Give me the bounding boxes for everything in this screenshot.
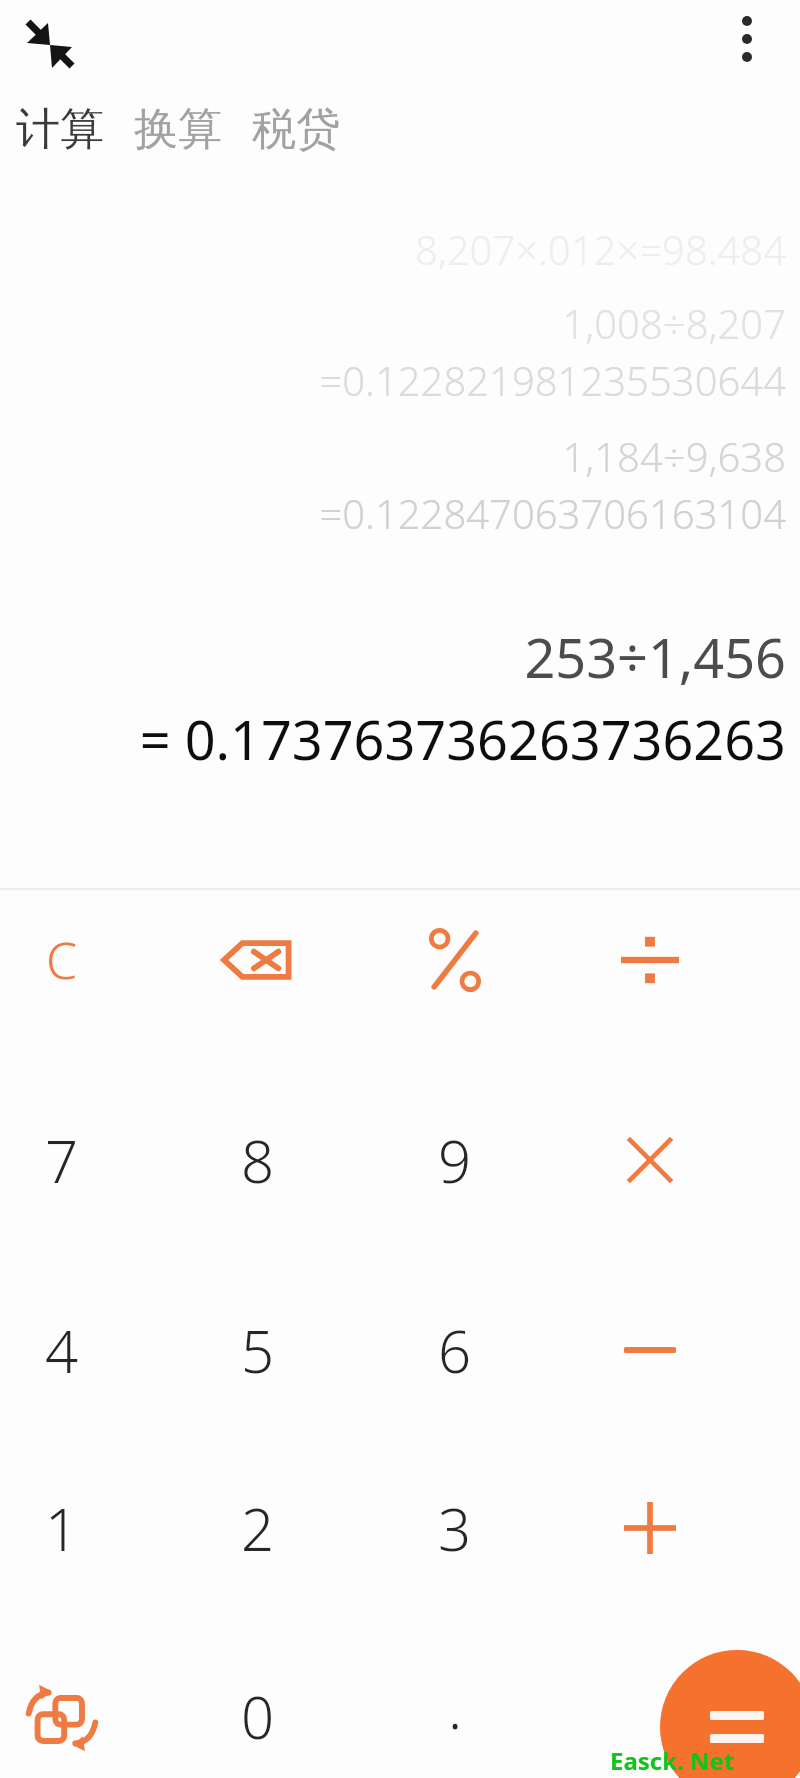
button[interactable]: 6 [360, 1266, 550, 1434]
button[interactable]: 0 [163, 1632, 353, 1778]
button[interactable]: 7 [0, 1076, 157, 1244]
staticText: 2 [241, 1489, 275, 1568]
staticText: =0.122821981235530644 [18, 353, 786, 407]
button[interactable]: Clear [0, 876, 157, 1044]
staticText: 9 [438, 1121, 472, 1200]
button[interactable]: 换算 [130, 96, 226, 163]
staticText: 0 [241, 1677, 275, 1756]
button[interactable]: 1 [0, 1444, 157, 1612]
staticText: 8,207×.012×=98.484 [18, 222, 786, 276]
staticText: 4 [45, 1311, 79, 1390]
staticText: . [448, 1667, 463, 1746]
staticText: 1,008÷8,207 [18, 296, 786, 350]
staticText: 计算 [16, 102, 104, 157]
staticText: 5 [241, 1311, 275, 1390]
button[interactable]: Divide [555, 876, 745, 1044]
button[interactable]: Collapse [4, 0, 88, 84]
staticText: 税贷 [252, 102, 340, 157]
staticText: 3 [438, 1489, 472, 1568]
staticText: 1 [45, 1489, 79, 1568]
button[interactable]: 4 [0, 1266, 157, 1434]
button[interactable]: Convert units [0, 1634, 157, 1778]
staticText: 6 [438, 1311, 472, 1390]
staticText: = 0.173763736263736263 [18, 702, 786, 776]
button[interactable]: Plus [555, 1444, 745, 1612]
staticText: 换算 [134, 102, 222, 157]
button[interactable]: Equals [660, 1650, 800, 1778]
staticText: 8 [241, 1121, 275, 1200]
button[interactable]: 5 [163, 1266, 353, 1434]
button[interactable]: 8 [163, 1076, 353, 1244]
button[interactable]: 2 [163, 1444, 353, 1612]
button[interactable]: Percent [360, 876, 550, 1044]
button[interactable]: 税贷 [248, 96, 344, 163]
button[interactable]: Multiply [555, 1076, 745, 1244]
button[interactable]: Backspace [163, 876, 353, 1044]
staticText: =0.122847063706163104 [18, 486, 786, 540]
button[interactable]: . [360, 1622, 550, 1778]
button[interactable]: 计算 [12, 96, 108, 163]
staticText: 253÷1,456 [18, 620, 786, 694]
staticText: C [46, 926, 78, 994]
button[interactable]: 3 [360, 1444, 550, 1612]
staticText: 1,184÷9,638 [18, 429, 786, 483]
staticText: 7 [45, 1121, 79, 1200]
button[interactable]: Minus [555, 1266, 745, 1434]
staticText: Easck. Net [610, 1744, 735, 1777]
button[interactable]: 9 [360, 1076, 550, 1244]
button[interactable]: More options [708, 0, 786, 78]
